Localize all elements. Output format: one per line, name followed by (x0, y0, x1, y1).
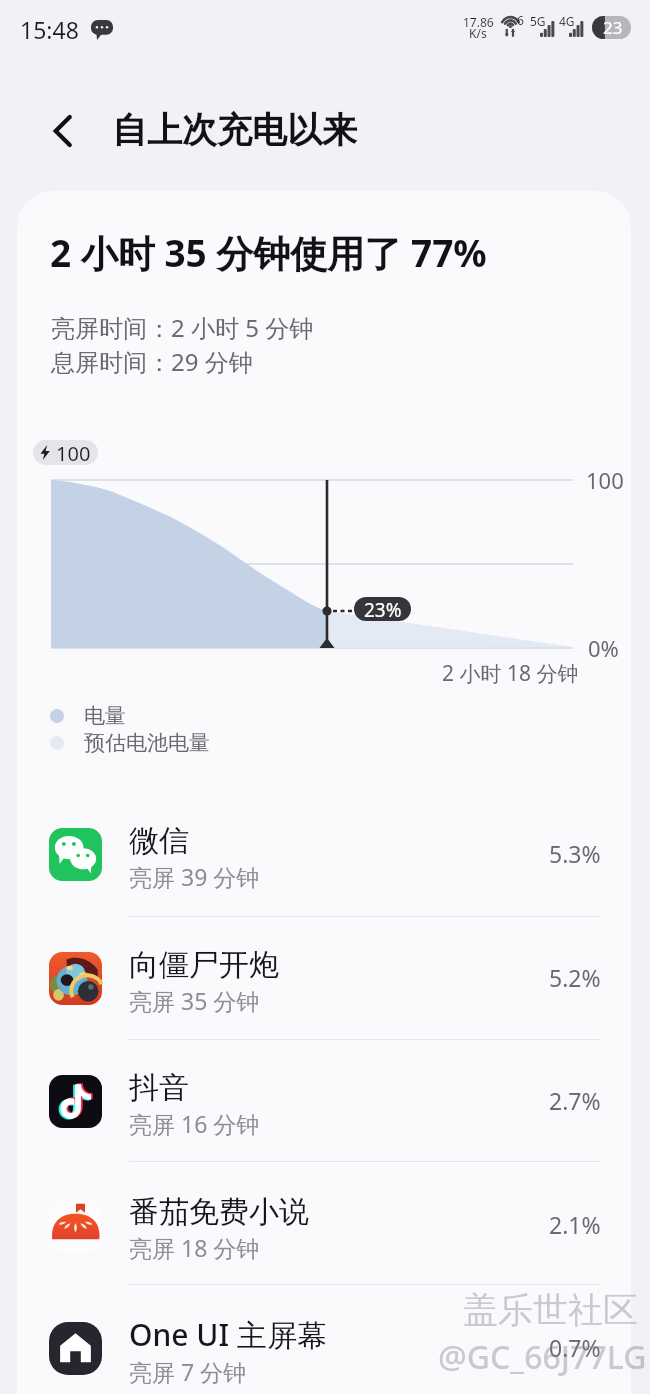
staticText: 5G (530, 13, 546, 29)
staticText: One UI 主屏幕 (129, 1314, 327, 1355)
staticText: 6 (517, 12, 524, 28)
staticText: 抖音 (129, 1069, 189, 1107)
staticText: 23% (364, 597, 402, 621)
button[interactable]: 番茄免费小说 (17, 1166, 631, 1289)
staticText: 0% (588, 633, 619, 663)
staticText: 亮屏 39 分钟 (129, 861, 260, 892)
staticText: 0.7% (549, 1332, 601, 1363)
staticText: 4G (559, 13, 575, 29)
staticText: 100 (586, 465, 624, 495)
staticText: 亮屏 7 分钟 (129, 1356, 247, 1387)
staticText: 亮屏 16 分钟 (129, 1108, 260, 1139)
staticText: 亮屏时间：2 小时 5 分钟 (51, 311, 314, 344)
staticText: 番茄免费小说 (129, 1193, 309, 1231)
button[interactable]: 微信 (17, 795, 631, 918)
staticText: 17.86 (463, 14, 494, 30)
button[interactable]: 抖音 (17, 1042, 631, 1165)
staticText: @GC_66J77LG (438, 1335, 647, 1379)
button[interactable]: One UI 主屏幕 (17, 1289, 631, 1394)
staticText: 2.1% (549, 1209, 601, 1240)
staticText: K/s (469, 25, 487, 41)
staticText: 5.3% (549, 838, 601, 869)
staticText: 微信 (129, 822, 189, 860)
staticText: 2 小时 18 分钟 (442, 659, 579, 688)
staticText: 亮屏 35 分钟 (129, 985, 260, 1016)
staticText: 2 小时 35 分钟使用了 77% (50, 227, 487, 278)
staticText: 2.7% (549, 1085, 601, 1116)
staticText: 100 (56, 440, 91, 465)
staticText: 自上次充电以来 (112, 108, 357, 152)
staticText: 亮屏 18 分钟 (129, 1232, 260, 1263)
staticText: 电量 (84, 703, 126, 729)
button[interactable]: Back (34, 102, 90, 158)
staticText: 5.2% (549, 962, 601, 993)
staticText: 23 (603, 16, 623, 39)
staticText: 预估电池电量 (84, 730, 210, 756)
button[interactable]: 向僵尸开炮 (17, 919, 631, 1042)
staticText: 向僵尸开炮 (129, 946, 279, 984)
staticText: 15:48 (20, 14, 79, 45)
staticText: 息屏时间：29 分钟 (51, 345, 253, 378)
staticText: 盖乐世社区 (463, 1288, 638, 1332)
